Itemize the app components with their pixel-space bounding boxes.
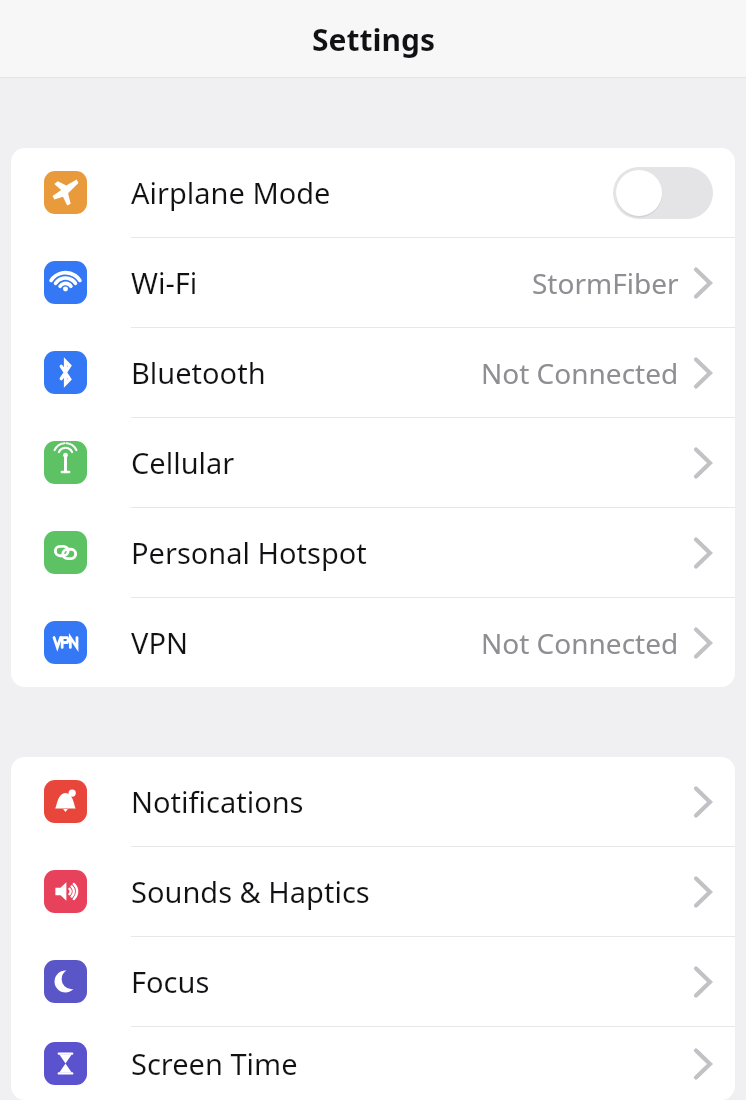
button[interactable]: Airplane Mode <box>11 148 735 237</box>
button[interactable]: Screen Time <box>11 1027 735 1100</box>
staticText: StormFiber <box>532 264 679 302</box>
staticText: VPN <box>131 623 188 662</box>
button[interactable]: VPN <box>11 598 735 687</box>
button[interactable]: Sounds & Haptics <box>11 847 735 936</box>
staticText: Cellular <box>131 443 235 482</box>
staticText: Not Connected <box>481 354 679 392</box>
staticText: Not Connected <box>481 624 679 662</box>
staticText: Focus <box>131 962 210 1001</box>
staticText: Wi-Fi <box>131 263 198 302</box>
button[interactable]: Bluetooth <box>11 328 735 417</box>
staticText: Bluetooth <box>131 353 266 392</box>
button[interactable]: Personal Hotspot <box>11 508 735 597</box>
staticText: Sounds & Haptics <box>131 872 370 911</box>
staticText: Settings <box>312 19 435 60</box>
button[interactable]: Wi-Fi <box>11 238 735 327</box>
staticText: Airplane Mode <box>131 173 331 212</box>
button[interactable]: Notifications <box>11 757 735 846</box>
button[interactable]: Airplane Mode toggle <box>613 167 713 219</box>
button[interactable]: Cellular <box>11 418 735 507</box>
staticText: Notifications <box>131 782 304 821</box>
staticText: Personal Hotspot <box>131 533 367 572</box>
button[interactable]: Focus <box>11 937 735 1026</box>
staticText: Screen Time <box>131 1044 298 1083</box>
